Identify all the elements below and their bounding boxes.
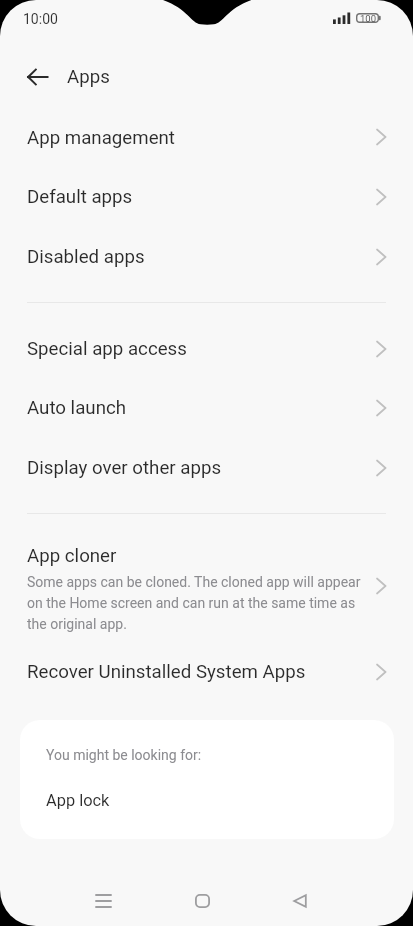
staticText: 100: [360, 13, 377, 24]
staticText: App management: [27, 127, 175, 149]
button[interactable]: Display over other apps: [0, 445, 413, 505]
button[interactable]: Disabled apps: [0, 234, 413, 294]
button[interactable]: Back: [23, 63, 51, 91]
button[interactable]: App management: [0, 114, 413, 174]
button[interactable]: Recent apps: [80, 878, 126, 924]
button[interactable]: Auto launch: [0, 385, 413, 445]
button[interactable]: Default apps: [0, 174, 413, 234]
staticText: Default apps: [27, 186, 133, 208]
button[interactable]: App cloner: [0, 530, 413, 645]
staticText: App lock: [46, 791, 110, 810]
staticText: You might be looking for:: [46, 747, 202, 763]
staticText: Recover Uninstalled System Apps: [27, 661, 306, 683]
staticText: Disabled apps: [27, 246, 145, 268]
staticText: App cloner: [27, 545, 117, 567]
staticText: Apps: [67, 66, 110, 88]
button[interactable]: Home: [179, 878, 225, 924]
staticText: Special app access: [27, 338, 187, 360]
button[interactable]: Recover Uninstalled System Apps: [0, 649, 413, 710]
staticText: 10:00: [23, 11, 58, 27]
button[interactable]: Back: [277, 878, 323, 924]
staticText: Auto launch: [27, 397, 127, 419]
staticText: Some apps can be cloned. The cloned app …: [27, 574, 372, 632]
button[interactable]: Special app access: [0, 325, 413, 385]
staticText: Display over other apps: [27, 457, 222, 479]
button[interactable]: You might be looking for:: [20, 720, 394, 839]
